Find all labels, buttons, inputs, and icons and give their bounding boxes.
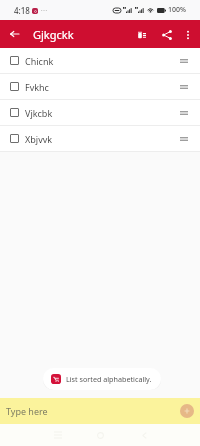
- button[interactable]: Add item: [180, 404, 194, 418]
- button[interactable]: Xbjvvk: [0, 126, 200, 151]
- staticText: Type here: [6, 405, 48, 417]
- button[interactable]: Reorder: [174, 103, 194, 123]
- staticText: Vjkcbk: [25, 107, 53, 119]
- button[interactable]: Share: [155, 23, 178, 46]
- button[interactable]: Reorder: [174, 51, 194, 71]
- button[interactable]: Delete checked items: [130, 23, 153, 46]
- button[interactable]: Back: [3, 23, 25, 45]
- button[interactable]: Chicnk: [0, 48, 200, 73]
- staticText: Gjkgckk: [33, 27, 74, 42]
- button[interactable]: More options: [176, 23, 199, 46]
- staticText: 100%: [168, 5, 186, 15]
- staticText: List sorted alphabetically.: [66, 374, 152, 384]
- button[interactable]: Reorder: [174, 77, 194, 97]
- staticText: Chicnk: [25, 55, 54, 67]
- staticText: Xbjvvk: [25, 133, 53, 145]
- button[interactable]: Fvkhc: [0, 74, 200, 99]
- button[interactable]: Reorder: [174, 129, 194, 149]
- staticText: 4:18: [14, 5, 30, 16]
- button[interactable]: Vjkcbk: [0, 100, 200, 125]
- staticText: Fvkhc: [25, 81, 49, 93]
